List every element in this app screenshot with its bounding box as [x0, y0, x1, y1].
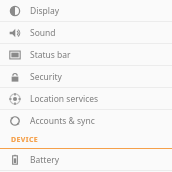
button[interactable]: Status bar	[0, 44, 172, 65]
staticText: Display	[30, 5, 59, 17]
button[interactable]: Display	[0, 0, 172, 21]
staticText: DEVICE	[11, 135, 39, 145]
staticText: Status bar	[30, 49, 71, 61]
staticText: Location services	[30, 93, 99, 105]
staticText: Sound	[30, 27, 56, 39]
button[interactable]: Battery	[0, 149, 172, 170]
button[interactable]: Sound	[0, 22, 172, 43]
staticText: Security	[30, 71, 62, 83]
staticText: Accounts & sync	[30, 115, 95, 127]
staticText: Battery	[30, 154, 60, 166]
button[interactable]: Security	[0, 66, 172, 87]
button[interactable]: Location services	[0, 88, 172, 109]
button[interactable]: Accounts & sync	[0, 110, 172, 131]
